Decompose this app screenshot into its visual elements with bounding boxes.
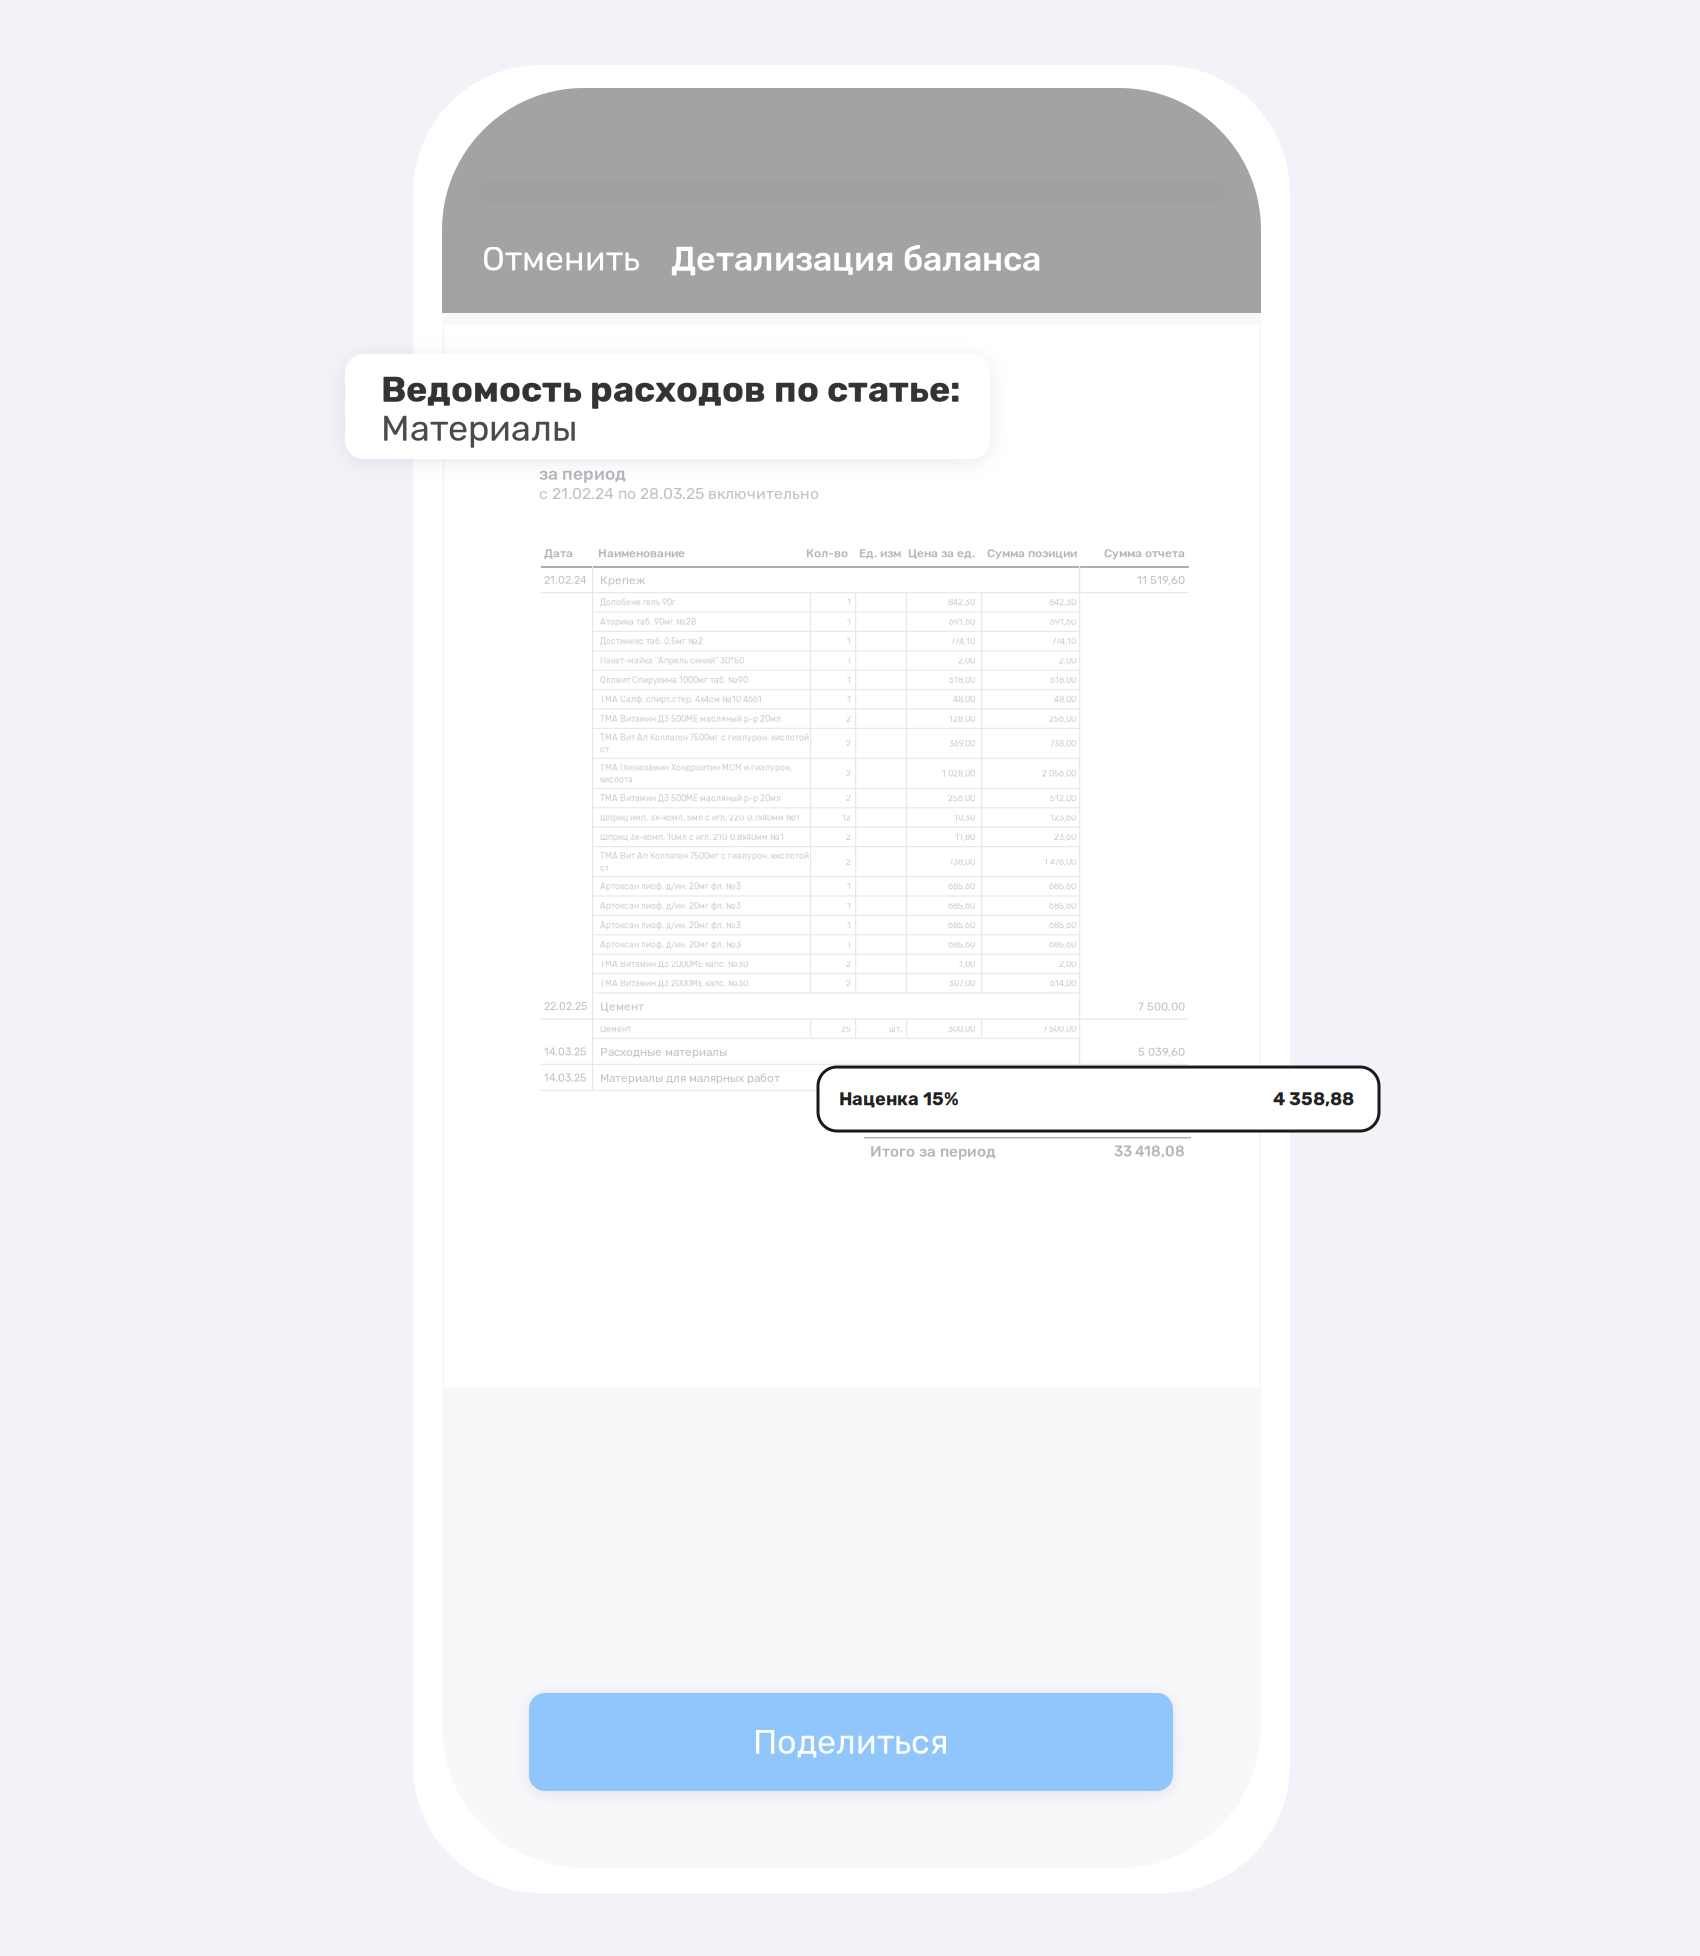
staticText: Достинекс таб. 0,5мг №2 [600, 636, 703, 646]
staticText: 10,30 [954, 813, 975, 823]
staticText: 685,60 [1049, 901, 1076, 911]
staticText: 5 039,60 [1138, 1045, 1185, 1059]
staticText: 300,00 [948, 1024, 975, 1034]
staticText: 691,60 [1050, 617, 1076, 627]
staticText: 685,60 [1049, 920, 1076, 930]
staticText: Цена за ед. [908, 546, 975, 560]
staticText: 25 [841, 1024, 851, 1034]
staticText: Артоксан лиоф. д/ин. 20мг фл. №3 [600, 901, 741, 911]
staticText: 738,00 [1050, 739, 1076, 749]
staticText: Материалы для малярных работ [600, 1071, 780, 1085]
staticText: 512,00 [1050, 793, 1076, 803]
staticText: 685,60 [948, 920, 975, 930]
staticText: Итого за период [870, 1142, 996, 1161]
staticText: 2 [846, 739, 851, 749]
staticText: 1 476,00 [1044, 857, 1076, 867]
staticText: 2 [846, 979, 851, 988]
staticText: 256,00 [1049, 714, 1076, 724]
staticText: Ед. изм [859, 546, 901, 560]
staticText: 1 [847, 675, 851, 685]
staticText: с 21.02.24 по 28.03.25 включительно [539, 484, 819, 503]
staticText: 14.03.25 [544, 1045, 586, 1058]
staticText: 1 [847, 882, 851, 891]
staticText: 2,00 [1059, 656, 1076, 666]
staticText: 2 [846, 959, 851, 969]
staticText: 2 056,00 [1042, 769, 1076, 779]
staticText: Ведомость расходов по статье: [381, 368, 961, 411]
staticText: Артоксан лиоф. д/ин. 20мг фл. №3 [600, 920, 741, 930]
staticText: 48,00 [1054, 695, 1076, 704]
staticText: 1 [847, 901, 851, 911]
staticText: Наименование [598, 546, 685, 560]
staticText: 1 028,00 [942, 769, 975, 779]
staticText: ТМА Витамин Д3 2000МЕ капс. №30 [600, 979, 748, 988]
staticText: Расходные материалы [600, 1045, 727, 1059]
staticText: шт. [889, 1024, 902, 1034]
staticText: 685,60 [948, 882, 975, 891]
staticText: 2 [846, 857, 851, 867]
staticText: ТМА Салф. спирт.стер. 4х4см №10 4661 [600, 695, 762, 704]
staticText: ст [600, 745, 609, 755]
staticText: 22.02.25 [544, 1000, 587, 1013]
staticText: 7 500,00 [1043, 1024, 1076, 1034]
staticText: Наценка 15% [839, 1088, 959, 1110]
staticText: Цемент [600, 1000, 644, 1013]
staticText: 1 [847, 940, 851, 950]
staticText: 1,00 [959, 959, 975, 969]
staticText: 685,60 [948, 901, 975, 911]
button[interactable]: Поделиться [529, 1693, 1173, 1791]
staticText: 1 [847, 656, 851, 666]
staticText: Шприц имп. 3х-комп. 5мл с игл. 22G 0,7х4… [600, 813, 800, 823]
staticText: 11 519,60 [1137, 573, 1185, 587]
staticText: 23,60 [1054, 832, 1076, 842]
staticText: 685,60 [948, 940, 975, 950]
staticText: 48,00 [953, 695, 975, 704]
staticText: Отменить [482, 239, 640, 279]
staticText: 685,60 [1049, 940, 1076, 950]
staticText: 842,30 [1049, 598, 1076, 607]
button[interactable]: Отменить [472, 225, 650, 293]
staticText: 256,00 [948, 793, 975, 803]
staticText: ТМА Витамин Д3 2000МЕ капс. №30 [600, 959, 748, 969]
staticText: 618,00 [949, 675, 975, 685]
staticText: 2 [846, 793, 851, 803]
staticText: 614,00 [1050, 979, 1076, 988]
staticText: ТМА Витамин Д3 500МЕ масляный р-р 20мл [600, 714, 781, 724]
staticText: 14.03.25 [544, 1071, 586, 1084]
staticText: 842,30 [948, 598, 975, 607]
staticText: Сумма позиции [987, 546, 1077, 560]
staticText: 1 [847, 598, 851, 607]
staticText: Аторика таб. 90мг №28 [600, 617, 696, 627]
staticText: Шприц 3х-комп. 10мл с игл. 21G 0,8х40мм … [600, 832, 784, 842]
staticText: ТМА Глюкозамин Хондроитин МСМ и гиалурон… [600, 763, 792, 773]
staticText: Кол-во [806, 546, 848, 560]
staticText: ст [600, 863, 609, 873]
staticText: 1 [847, 617, 851, 627]
staticText: 1 [847, 920, 851, 930]
staticText: Долобене гель 90г [600, 598, 676, 607]
staticText: Крепеж [600, 573, 645, 587]
button[interactable]: Детализация баланса [661, 225, 1051, 293]
staticText: Детализация баланса [671, 239, 1041, 279]
staticText: 11,80 [955, 832, 975, 842]
staticText: Пакет-майка "Апрель синий" 30*50 [600, 656, 744, 666]
staticText: ТМА Витамин Д3 500МЕ масляный р-р 20мл [600, 793, 781, 803]
staticText: 128,00 [949, 714, 975, 724]
staticText: 7 500,00 [1138, 1000, 1185, 1013]
staticText: 21.02.24 [544, 574, 587, 586]
staticText: Поделиться [753, 1722, 949, 1762]
staticText: 2 [846, 832, 851, 842]
staticText: Артоксан лиоф. д/ин. 20мг фл. №3 [600, 882, 741, 891]
staticText: 618,00 [1050, 675, 1076, 685]
staticText: 738,00 [949, 857, 975, 867]
staticText: 691,60 [949, 617, 975, 627]
staticText: 369,00 [949, 739, 975, 749]
staticText: ТМА Вит Ап Коллаген 7500мг с гиалурон. к… [600, 851, 809, 861]
staticText: 685,60 [1049, 882, 1076, 891]
staticText: 2 [846, 714, 851, 724]
staticText: Сумма отчета [1104, 546, 1185, 560]
staticText: Материалы [381, 407, 577, 450]
staticText: 4 358,88 [1273, 1088, 1354, 1110]
staticText: Артоксан лиоф. д/ин. 20мг фл. №3 [600, 940, 741, 950]
staticText: 2,00 [1059, 959, 1076, 969]
